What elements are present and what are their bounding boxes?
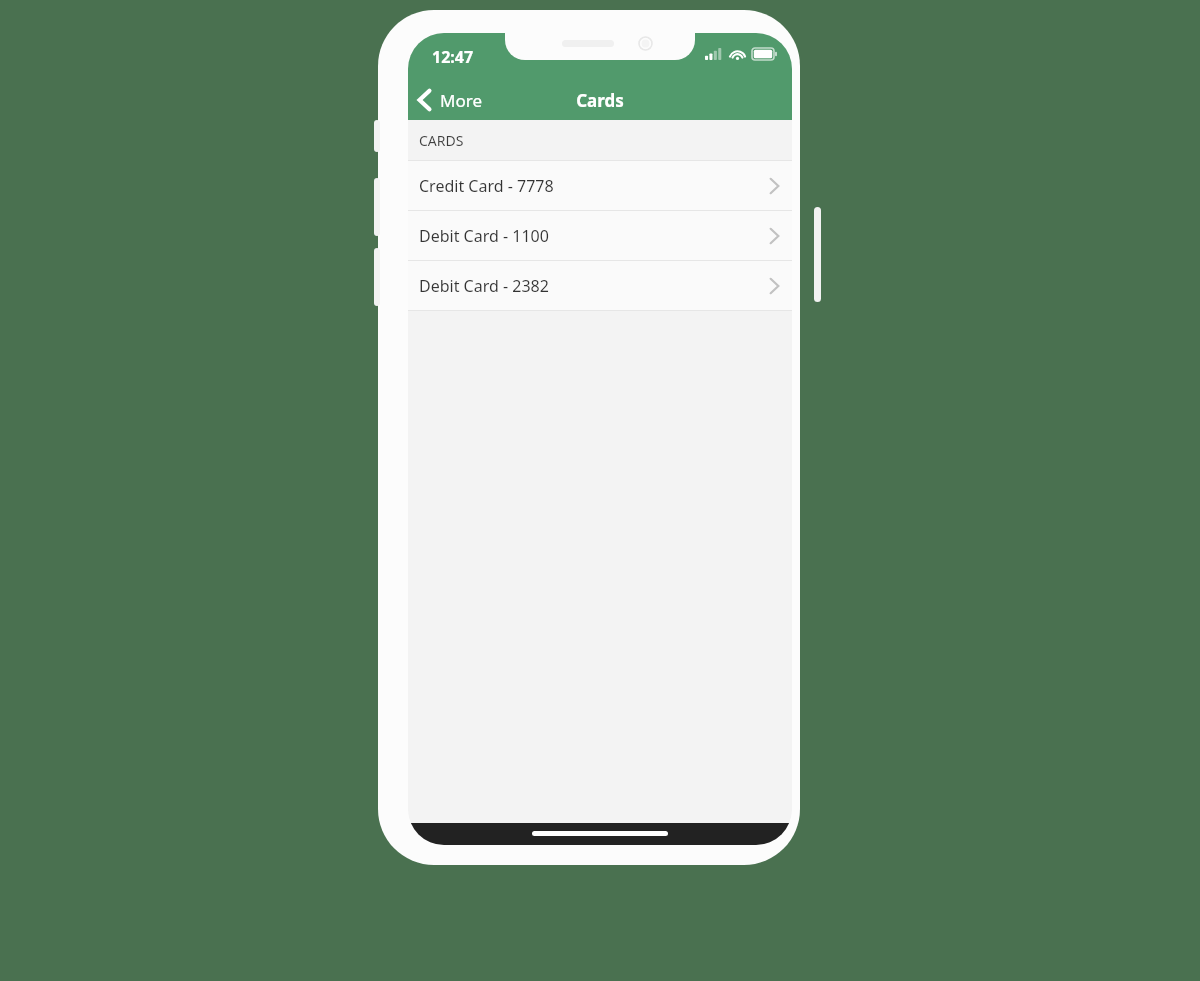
staticText: Cards: [576, 89, 624, 112]
staticText: Debit Card - 2382: [419, 275, 769, 297]
staticText: 12:47: [432, 46, 474, 68]
staticText: CARDS: [419, 131, 464, 150]
button[interactable]: More: [408, 80, 490, 120]
staticText: Credit Card - 7778: [419, 175, 769, 197]
button[interactable]: Debit Card - 1100: [408, 211, 792, 260]
staticText: More: [440, 89, 482, 112]
button[interactable]: Debit Card - 2382: [408, 261, 792, 310]
button[interactable]: Credit Card - 7778: [408, 161, 792, 210]
staticText: Debit Card - 1100: [419, 225, 769, 247]
